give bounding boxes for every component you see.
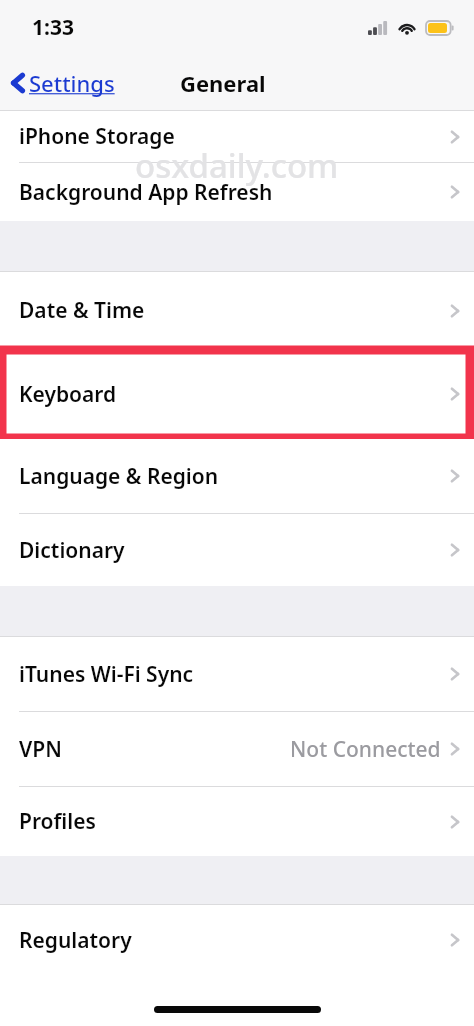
staticText: Keyboard: [19, 380, 117, 409]
button[interactable]: VPN: [0, 712, 474, 786]
staticText: Dictionary: [19, 536, 125, 565]
staticText: Settings: [29, 68, 115, 98]
staticText: iPhone Storage: [19, 122, 175, 151]
button[interactable]: Regulatory: [0, 905, 474, 975]
button[interactable]: Language & Region: [0, 439, 474, 513]
button[interactable]: Background App Refresh: [0, 163, 474, 221]
staticText: General: [180, 68, 266, 98]
button[interactable]: [0, 349, 474, 439]
staticText: Date & Time: [19, 296, 145, 325]
staticText: Language & Region: [19, 462, 219, 491]
staticText: VPN: [19, 735, 62, 764]
staticText: Profiles: [19, 807, 96, 836]
staticText: 1:33: [32, 13, 74, 42]
button[interactable]: Settings: [0, 68, 125, 98]
other: Home indicator: [154, 1006, 321, 1013]
button[interactable]: iTunes Wi-Fi Sync: [0, 637, 474, 711]
staticText: iTunes Wi-Fi Sync: [19, 660, 194, 689]
button[interactable]: Profiles: [0, 787, 474, 856]
staticText: Not Connected: [290, 735, 441, 764]
button[interactable]: Date & Time: [0, 272, 474, 349]
button[interactable]: Dictionary: [0, 514, 474, 586]
staticText: osxdaily.com: [135, 143, 339, 188]
staticText: Background App Refresh: [19, 178, 273, 207]
staticText: Regulatory: [19, 926, 132, 955]
button[interactable]: iPhone Storage: [0, 111, 474, 162]
